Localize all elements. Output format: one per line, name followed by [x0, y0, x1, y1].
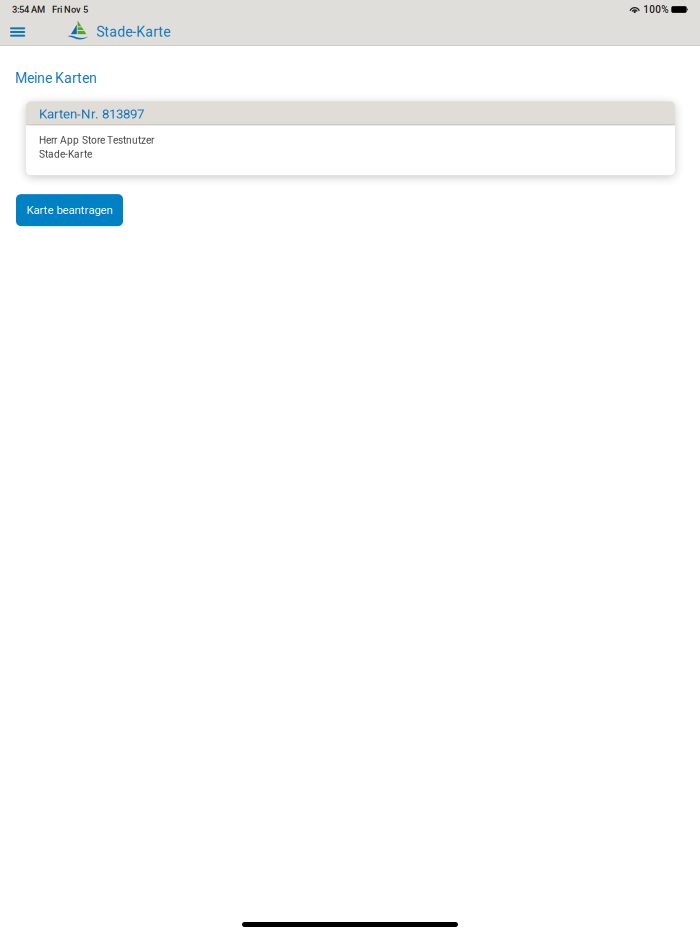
staticText: Fri Nov 5	[52, 4, 88, 15]
button[interactable]: Karte beantragen	[16, 194, 123, 226]
staticText: 3:54 AM	[12, 4, 45, 15]
staticText: Karten-Nr. 813897	[39, 106, 144, 122]
button[interactable]: Menu	[0, 18, 35, 45]
staticText: Herr App Store Testnutzer	[39, 134, 154, 146]
staticText: Stade-Karte	[39, 148, 92, 160]
staticText: Meine Karten	[15, 70, 97, 86]
staticText: Stade-Karte	[96, 24, 170, 40]
staticText: Karte beantragen	[26, 203, 112, 217]
staticText: 100%	[643, 4, 668, 15]
